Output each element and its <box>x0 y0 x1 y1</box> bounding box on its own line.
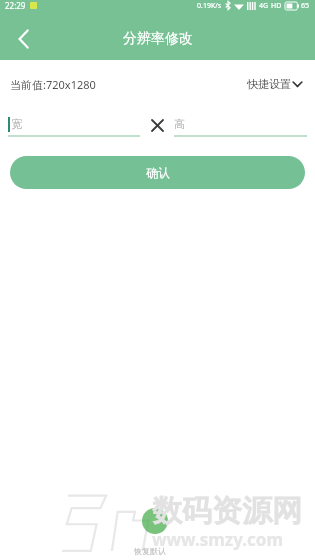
button[interactable]: 恢复默认 <box>134 546 166 556</box>
staticText: 确认 <box>146 165 170 180</box>
button[interactable]: 确认 <box>10 156 305 189</box>
staticText: 高 <box>174 117 185 131</box>
staticText: 快捷设置 <box>247 77 291 91</box>
staticText: 22:29 <box>5 0 26 11</box>
staticText: 数码资源网 <box>152 492 302 530</box>
staticText: HD <box>271 1 282 11</box>
staticText: 0.19K/s <box>197 1 222 11</box>
staticText: 65 <box>301 1 310 11</box>
button[interactable]: 快捷设置 <box>245 74 305 94</box>
staticText: 宽 <box>11 117 22 131</box>
staticText: 当前值:720x1280 <box>10 77 96 92</box>
button[interactable]: 宽 <box>8 113 140 137</box>
staticText: 分辨率修改 <box>123 30 193 48</box>
button[interactable]: 高 <box>174 113 307 137</box>
button[interactable]: Back <box>8 24 38 54</box>
staticText: www.smzy.com <box>152 528 284 551</box>
staticText: 4G <box>259 1 269 11</box>
